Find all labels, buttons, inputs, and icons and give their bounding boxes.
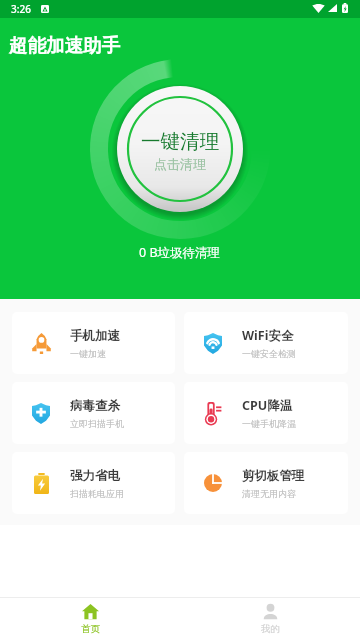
staticText: 强力省电 — [70, 468, 120, 484]
staticText: 一键加速 — [70, 348, 106, 359]
staticText: 超能加速助手 — [9, 34, 120, 57]
staticText: 扫描耗电应用 — [70, 488, 124, 499]
staticText: 0 B垃圾待清理 — [139, 244, 221, 261]
staticText: 一键安全检测 — [242, 348, 296, 359]
button[interactable]: 剪切板管理 — [184, 452, 348, 514]
staticText: 手机加速 — [70, 328, 120, 344]
button[interactable]: 手机加速 — [12, 312, 175, 374]
staticText: 病毒查杀 — [70, 398, 120, 414]
button[interactable]: 强力省电 — [12, 452, 175, 514]
staticText: 3:26 — [11, 2, 31, 16]
staticText: 立即扫描手机 — [70, 418, 124, 429]
staticText: 一键清理 — [141, 129, 219, 154]
staticText: 我的 — [261, 623, 280, 635]
button[interactable]: 病毒查杀 — [12, 382, 175, 444]
staticText: 剪切板管理 — [242, 468, 305, 484]
button[interactable]: WiFi安全 — [184, 312, 348, 374]
staticText: WiFi安全 — [242, 327, 294, 344]
staticText: 点击清理 — [154, 156, 206, 172]
button[interactable]: 首页 — [0, 598, 180, 640]
staticText: 一键手机降温 — [242, 418, 296, 429]
staticText: CPU降温 — [242, 397, 293, 414]
button[interactable]: 一键清理 — [117, 86, 243, 212]
staticText: 清理无用内容 — [242, 488, 296, 499]
button[interactable]: CPU降温 — [184, 382, 348, 444]
button[interactable]: 我的 — [180, 598, 360, 640]
staticText: 首页 — [81, 623, 100, 635]
